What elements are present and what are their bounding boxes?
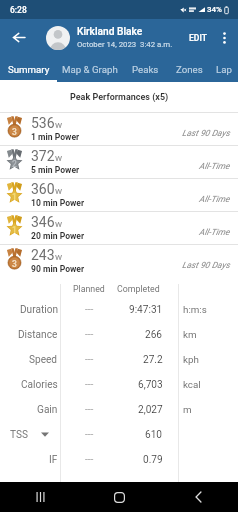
staticText: w bbox=[55, 152, 63, 163]
staticText: TSS bbox=[10, 429, 28, 441]
button[interactable]: Recent apps bbox=[0, 482, 80, 512]
button[interactable]: Home bbox=[80, 482, 159, 512]
staticText: Planned bbox=[73, 284, 105, 294]
staticText: Zones bbox=[176, 64, 203, 75]
staticText: h:m:s bbox=[183, 304, 207, 315]
staticText: 346 bbox=[31, 214, 55, 230]
staticText: Peaks bbox=[132, 64, 159, 75]
staticText: kph bbox=[183, 354, 199, 365]
staticText: w bbox=[55, 218, 63, 229]
staticText: 20 min Power bbox=[31, 231, 85, 241]
button[interactable]: 3 bbox=[0, 245, 238, 277]
staticText: Completed bbox=[117, 284, 160, 294]
button[interactable]: Map & Graph bbox=[57, 56, 123, 82]
staticText: Kirkland Blake bbox=[77, 26, 143, 38]
staticText: --- bbox=[85, 404, 94, 416]
staticText: Gain bbox=[37, 404, 58, 416]
staticText: All-Time bbox=[199, 194, 230, 204]
button[interactable]: Lap bbox=[210, 56, 238, 82]
staticText: --- bbox=[85, 429, 94, 441]
button[interactable]: Back bbox=[0, 19, 37, 56]
staticText: w bbox=[55, 185, 63, 196]
staticText: 3 bbox=[12, 127, 17, 137]
staticText: Map & Graph bbox=[62, 64, 118, 75]
staticText: 5 min Power bbox=[31, 165, 80, 175]
staticText: Last 90 Days bbox=[182, 128, 230, 138]
staticText: Summary bbox=[8, 64, 50, 75]
staticText: 1 bbox=[12, 192, 17, 202]
button[interactable]: Back bbox=[159, 482, 238, 512]
staticText: October 14, 2023 3:42 a.m. bbox=[77, 40, 173, 49]
staticText: 10 min Power bbox=[31, 198, 85, 208]
staticText: All-Time bbox=[199, 161, 230, 171]
staticText: 266 bbox=[145, 329, 163, 341]
staticText: 1 min Power bbox=[31, 132, 80, 142]
button[interactable]: Peaks bbox=[123, 56, 168, 82]
staticText: 1 bbox=[12, 225, 17, 235]
staticText: m bbox=[183, 404, 192, 415]
staticText: --- bbox=[85, 354, 94, 366]
staticText: Duration bbox=[20, 304, 58, 316]
staticText: km bbox=[183, 329, 197, 340]
staticText: 2 bbox=[12, 159, 17, 169]
staticText: 536 bbox=[31, 115, 55, 131]
staticText: 243 bbox=[31, 247, 55, 263]
staticText: EDIT bbox=[189, 33, 207, 43]
staticText: --- bbox=[85, 454, 94, 466]
staticText: 6:28 bbox=[10, 5, 27, 15]
staticText: 6,703 bbox=[138, 379, 163, 391]
staticText: Lap bbox=[216, 64, 232, 75]
staticText: w bbox=[55, 119, 63, 130]
staticText: 372 bbox=[31, 148, 55, 164]
staticText: Peak Performances (x5) bbox=[70, 92, 169, 103]
staticText: 9:47:31 bbox=[129, 304, 163, 316]
button[interactable]: 3 bbox=[0, 113, 238, 145]
button[interactable]: 1 bbox=[0, 179, 238, 211]
staticText: 360 bbox=[31, 181, 55, 197]
staticText: --- bbox=[85, 304, 94, 316]
staticText: Calories bbox=[21, 379, 58, 391]
staticText: w bbox=[55, 251, 63, 262]
staticText: IF bbox=[49, 454, 58, 466]
staticText: All-Time bbox=[199, 227, 230, 237]
button[interactable]: Summary bbox=[0, 56, 57, 82]
staticText: Speed bbox=[29, 354, 58, 366]
staticText: 34% bbox=[207, 5, 222, 14]
button[interactable]: 2 bbox=[0, 146, 238, 178]
staticText: Distance bbox=[18, 329, 58, 341]
staticText: Last 90 Days bbox=[182, 260, 230, 270]
button[interactable]: Zones bbox=[168, 56, 210, 82]
button[interactable]: TSS bbox=[0, 422, 58, 447]
staticText: 3 bbox=[12, 259, 17, 269]
staticText: --- bbox=[85, 329, 94, 341]
button[interactable]: More options bbox=[213, 19, 235, 56]
staticText: 610 bbox=[145, 429, 163, 441]
button[interactable]: EDIT bbox=[183, 23, 213, 53]
button[interactable]: 1 bbox=[0, 212, 238, 244]
staticText: 27.2 bbox=[143, 354, 163, 366]
staticText: 0.79 bbox=[143, 454, 163, 466]
staticText: --- bbox=[85, 379, 94, 391]
staticText: kcal bbox=[183, 379, 201, 390]
staticText: 90 min Power bbox=[31, 264, 85, 274]
staticText: 2,027 bbox=[138, 404, 163, 416]
